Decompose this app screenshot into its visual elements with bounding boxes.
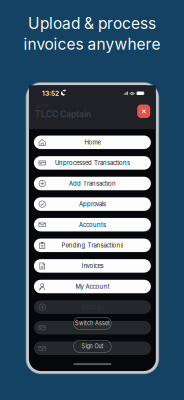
- button[interactable]: Accounts: [34, 218, 151, 231]
- staticText: Switch Asset: [75, 320, 110, 327]
- button[interactable]: My Account: [34, 280, 151, 293]
- staticText: invoices anywhere: [23, 35, 160, 53]
- button[interactable]: Home: [34, 136, 151, 149]
- staticText: Accounts: [79, 221, 106, 228]
- button[interactable]: Close: [137, 104, 150, 118]
- staticText: Unprocessed Transactions: [55, 159, 130, 167]
- button[interactable]: Invoices: [34, 259, 151, 273]
- staticText: Switch Asset: [74, 324, 110, 331]
- button[interactable]: Settings: [34, 300, 151, 314]
- button[interactable]: Approvals: [34, 197, 151, 211]
- staticText: Sign Out: [79, 345, 105, 352]
- staticText: Invoices: [81, 262, 103, 270]
- staticText: Approvals: [79, 200, 106, 208]
- button[interactable]: Sign Out: [74, 340, 111, 352]
- staticText: 13:52: [42, 89, 59, 97]
- button[interactable]: Switch Asset: [34, 321, 151, 334]
- button[interactable]: Add Transaction: [34, 177, 151, 190]
- button[interactable]: Switch Asset: [74, 317, 111, 329]
- button[interactable]: Sign Out: [34, 341, 151, 355]
- staticText: Pending Transactions: [61, 242, 123, 249]
- staticText: Upload & process: [28, 14, 156, 33]
- button[interactable]: Unprocessed Transactions: [34, 156, 151, 170]
- staticText: My Account: [75, 283, 109, 290]
- staticText: TLCC Captain: [35, 109, 91, 119]
- button[interactable]: Pending Transactions: [34, 239, 151, 252]
- staticText: Sign Out: [81, 343, 103, 350]
- staticText: Home: [84, 139, 100, 146]
- staticText: Add Transaction: [69, 180, 116, 187]
